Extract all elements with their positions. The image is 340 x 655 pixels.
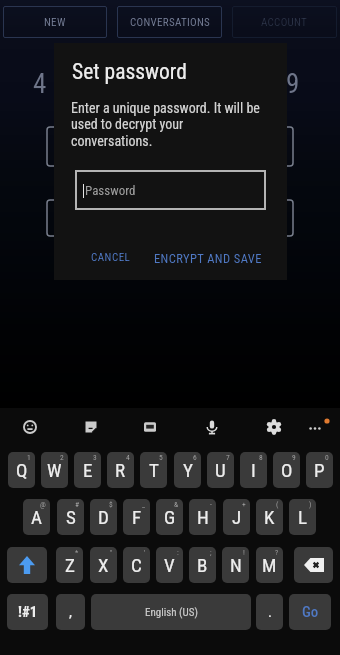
staticText: P xyxy=(314,459,325,481)
staticText: A xyxy=(31,506,42,528)
staticText: , xyxy=(69,603,72,621)
button[interactable]: T xyxy=(140,452,167,488)
staticText: T xyxy=(149,459,159,481)
staticText: 4 xyxy=(126,453,130,462)
button[interactable]: . xyxy=(256,594,283,630)
button[interactable]: U xyxy=(207,452,234,488)
button[interactable]: B xyxy=(189,547,216,583)
staticText: F xyxy=(132,506,142,528)
staticText: D xyxy=(98,506,109,528)
button[interactable]: Q xyxy=(8,452,35,488)
staticText: M xyxy=(262,554,277,576)
button[interactable]: K xyxy=(256,499,283,535)
button[interactable]: J xyxy=(223,499,250,535)
staticText: 2 xyxy=(60,453,64,462)
staticText: S xyxy=(66,506,76,528)
staticText: * xyxy=(75,548,79,557)
staticText: !#1 xyxy=(18,603,38,621)
button[interactable]: Y xyxy=(174,452,201,488)
staticText: ENCRYPT AND SAVE xyxy=(154,251,262,266)
button[interactable]: P xyxy=(306,452,333,488)
button[interactable]: English (US) xyxy=(91,594,251,630)
staticText: 6 xyxy=(193,453,197,462)
staticText: ) xyxy=(309,500,312,509)
button[interactable]: Shift xyxy=(7,547,47,583)
button[interactable]: G xyxy=(156,499,183,535)
staticText: Enter a unique password. It will be used… xyxy=(71,100,260,149)
button[interactable]: Z xyxy=(56,547,83,583)
staticText: $ xyxy=(109,500,113,509)
staticText: W xyxy=(47,459,62,481)
staticText: ' xyxy=(144,548,146,557)
staticText: 1 xyxy=(27,453,31,462)
button[interactable]: M xyxy=(256,547,283,583)
button[interactable]: GIF xyxy=(136,413,164,441)
staticText: ; xyxy=(210,548,212,557)
button[interactable]: ACCOUNT xyxy=(232,6,337,38)
button[interactable]: CANCEL xyxy=(84,246,138,269)
button[interactable]: E xyxy=(74,452,101,488)
button[interactable]: L xyxy=(289,499,316,535)
staticText: + xyxy=(242,500,246,509)
staticText: @ xyxy=(40,500,46,509)
staticText: C xyxy=(131,554,142,576)
staticText: L xyxy=(298,506,308,528)
staticText: NEW xyxy=(44,16,66,29)
button[interactable]: , xyxy=(56,594,85,630)
staticText: Q xyxy=(16,459,28,481)
staticText: ( xyxy=(276,500,279,509)
staticText: 9 xyxy=(286,68,300,100)
button[interactable]: W xyxy=(41,452,68,488)
staticText: Z xyxy=(65,554,75,576)
button[interactable]: CONVERSATIONS xyxy=(117,6,222,38)
button[interactable]: N xyxy=(222,547,249,583)
button[interactable]: H xyxy=(189,499,216,535)
button[interactable]: Backspace xyxy=(294,547,333,583)
button[interactable]: ENCRYPT AND SAVE xyxy=(147,246,269,271)
button[interactable]: S xyxy=(57,499,84,535)
button[interactable]: V xyxy=(156,547,183,583)
staticText: H xyxy=(197,506,209,528)
button[interactable]: X xyxy=(90,547,117,583)
button[interactable]: Password xyxy=(75,170,266,210)
staticText: E xyxy=(83,459,93,481)
button[interactable]: D xyxy=(90,499,117,535)
staticText: I xyxy=(251,459,256,481)
staticText: 7 xyxy=(226,453,230,462)
staticText: O xyxy=(281,459,293,481)
staticText: X xyxy=(98,554,109,576)
button[interactable]: Stickers xyxy=(77,413,105,441)
button[interactable]: NEW xyxy=(3,6,107,38)
staticText: U xyxy=(215,459,226,481)
button[interactable]: R xyxy=(107,452,134,488)
staticText: 9 xyxy=(292,453,296,462)
staticText: " xyxy=(110,548,113,557)
staticText: : xyxy=(177,548,179,557)
staticText: Set password xyxy=(72,59,187,84)
staticText: English (US) xyxy=(145,606,198,619)
staticText: J xyxy=(232,506,242,528)
staticText: ? xyxy=(275,548,279,557)
staticText: Password xyxy=(85,183,136,198)
staticText: Y xyxy=(183,459,193,481)
button[interactable]: Go xyxy=(289,594,331,630)
staticText: K xyxy=(264,506,275,528)
staticText: 8 xyxy=(259,453,263,462)
button[interactable]: A xyxy=(23,499,50,535)
button[interactable]: F xyxy=(123,499,150,535)
button[interactable]: Voice input xyxy=(198,413,226,441)
button[interactable]: I xyxy=(240,452,267,488)
staticText: B xyxy=(197,554,208,576)
button[interactable]: C xyxy=(123,547,150,583)
button[interactable]: O xyxy=(273,452,300,488)
staticText: G xyxy=(164,506,176,528)
staticText: 5 xyxy=(159,453,163,462)
button[interactable]: Emoji xyxy=(16,413,44,441)
button[interactable]: More options xyxy=(303,416,333,438)
staticText: 0 xyxy=(325,453,329,462)
staticText: & xyxy=(174,500,179,509)
button[interactable]: !#1 xyxy=(7,594,48,630)
staticText: V xyxy=(164,554,175,576)
button[interactable]: Settings xyxy=(260,413,288,441)
staticText: _ xyxy=(142,500,146,509)
